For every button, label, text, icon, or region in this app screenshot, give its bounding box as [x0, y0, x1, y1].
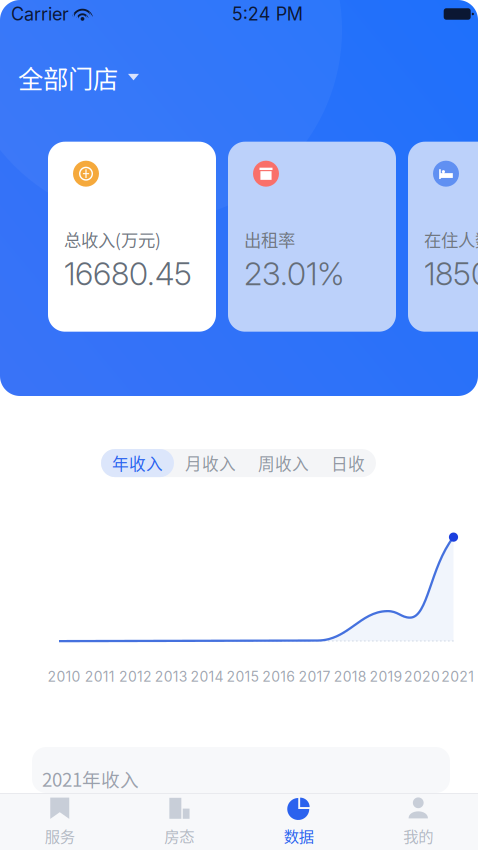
- staticText: 周收入: [258, 451, 309, 475]
- staticText: 2013: [155, 668, 188, 685]
- button[interactable]: 我的: [358, 790, 478, 850]
- button[interactable]: 出租率: [228, 142, 396, 332]
- staticText: 2019: [370, 668, 403, 685]
- button[interactable]: 总收入(万元): [48, 142, 216, 332]
- staticText: 2010: [47, 668, 80, 685]
- staticText: 在住人数: [424, 227, 478, 252]
- staticText: 2021年收入: [42, 765, 139, 792]
- button[interactable]: 全部门店: [0, 51, 153, 104]
- staticText: 2014: [191, 668, 224, 685]
- staticText: 16680.45: [64, 255, 192, 293]
- staticText: 房态: [164, 824, 194, 847]
- button[interactable]: 年收入: [101, 449, 174, 477]
- staticText: 我的: [403, 824, 433, 847]
- staticText: 2018: [334, 668, 367, 685]
- staticText: Carrier: [11, 3, 69, 25]
- button[interactable]: 服务: [0, 790, 119, 850]
- staticText: 2016: [262, 668, 295, 685]
- staticText: 年收入: [112, 451, 163, 475]
- staticText: 月收入: [185, 451, 236, 475]
- staticText: 1850: [424, 255, 478, 293]
- button[interactable]: 周收入: [247, 449, 320, 477]
- button[interactable]: 日收: [320, 449, 376, 477]
- staticText: 2011: [85, 668, 115, 685]
- staticText: 5:24 PM: [232, 3, 303, 25]
- button[interactable]: 房态: [119, 790, 239, 850]
- staticText: 全部门店: [18, 59, 118, 96]
- staticText: 23.01%: [244, 255, 345, 293]
- staticText: 2020: [404, 668, 440, 685]
- button[interactable]: 在住人数: [408, 142, 478, 332]
- staticText: 出租率: [244, 227, 295, 252]
- staticText: 2017: [298, 668, 330, 685]
- staticText: 日收: [331, 451, 365, 475]
- staticText: 2021: [441, 668, 474, 685]
- staticText: 服务: [45, 824, 75, 847]
- staticText: 2012: [119, 668, 152, 685]
- staticText: 数据: [284, 824, 314, 847]
- staticText: 2015: [226, 668, 259, 685]
- button[interactable]: 月收入: [174, 449, 247, 477]
- button[interactable]: 数据: [239, 790, 358, 850]
- staticText: 总收入(万元): [64, 227, 161, 252]
